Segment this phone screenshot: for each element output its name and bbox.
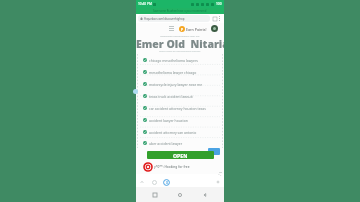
staticText: Ad — [219, 170, 222, 173]
staticText: search result for mesothelioma attorney — [159, 50, 201, 53]
staticText: texas truck accident lawsuit — [149, 94, 193, 99]
staticText: P — [181, 27, 184, 32]
staticText: chicago mesothelioma lawyers — [149, 58, 198, 63]
button[interactable]: chicago mesothelioma lawyers — [141, 54, 219, 66]
button[interactable]: Account — [211, 25, 218, 32]
button[interactable]: More options — [217, 16, 222, 21]
staticText: ⌃⌄ — [218, 174, 222, 177]
button[interactable]: accident lawyer houston — [141, 114, 219, 126]
button[interactable]: uber accident lawyer — [141, 138, 219, 148]
button[interactable]: Reload — [151, 179, 158, 186]
button[interactable]: New tab — [215, 179, 221, 185]
button[interactable]: Tabs — [212, 16, 217, 21]
button[interactable]: Record — [142, 161, 153, 172]
button[interactable]: Menu — [169, 26, 174, 31]
button[interactable]: Back — [199, 189, 211, 201]
staticText: car accident attorney houston texas — [149, 106, 206, 111]
staticText: fhqueboe.com/discoverhighop — [144, 17, 185, 21]
button[interactable]: Tabs — [162, 178, 171, 187]
staticText: Save some Rs when have a you recommend — [153, 9, 207, 13]
staticText: Earn Points! — [186, 27, 207, 32]
button[interactable]: car accident attorney houston texas — [141, 102, 219, 114]
staticText: OPEN — [173, 152, 188, 159]
button[interactable]: motorcycle injury lawyer near me — [141, 78, 219, 90]
staticText: accident attorney san antonio — [149, 130, 197, 135]
staticText: 100 — [216, 2, 222, 6]
staticText: Emer Old Nitariais Sto — [136, 37, 224, 50]
staticText: accident lawyer houston — [149, 118, 188, 123]
button[interactable]: Recents — [149, 189, 161, 201]
staticText: mesothelioma lawyer chicago — [149, 70, 197, 75]
staticText: nationwide mesothelioma near me — [160, 34, 200, 37]
button[interactable]: Back — [139, 179, 145, 185]
button[interactable]: P — [178, 26, 208, 32]
staticText: 10:40 PM — [138, 2, 152, 6]
staticText: y*0**: Hooking for free — [154, 165, 190, 169]
button[interactable]: mesothelioma lawyer chicago — [141, 66, 219, 78]
staticText: 3 — [166, 181, 168, 185]
button[interactable]: texas truck accident lawsuit — [141, 90, 219, 102]
staticText: motorcycle injury lawyer near me — [149, 82, 203, 87]
button[interactable]: OPEN — [147, 151, 214, 159]
button[interactable]: Home — [174, 189, 186, 201]
button[interactable]: accident attorney san antonio — [141, 126, 219, 138]
button[interactable]: fhqueboe.com/discoverhighop — [138, 15, 210, 22]
staticText: uber accident lawyer — [149, 141, 183, 146]
